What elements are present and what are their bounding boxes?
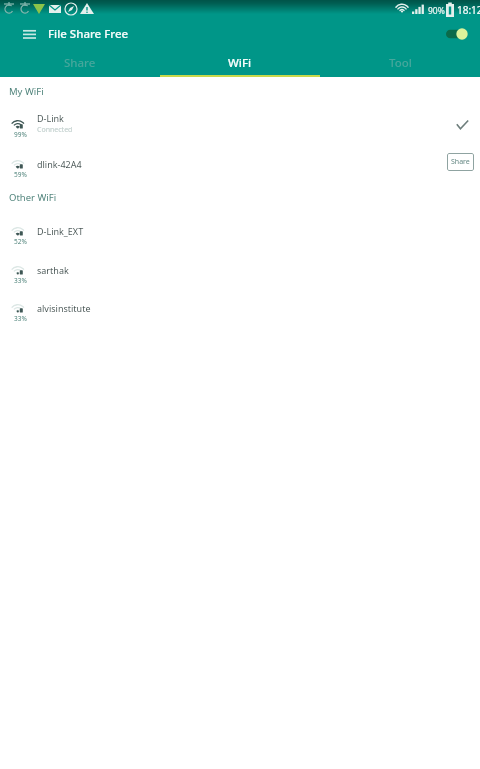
- button[interactable]: Menu: [0, 20, 48, 48]
- staticText: My WiFi: [9, 85, 44, 98]
- staticText: File Share Free: [48, 26, 129, 42]
- staticText: dlink-42A4: [37, 158, 82, 170]
- button[interactable]: Share: [447, 153, 474, 171]
- staticText: 59%: [14, 170, 27, 179]
- staticText: D-Link_EXT: [37, 225, 84, 237]
- button[interactable]: 52%: [0, 212, 480, 250]
- staticText: 18:12: [457, 3, 480, 17]
- staticText: sarthak: [37, 264, 69, 276]
- staticText: 52%: [14, 237, 27, 246]
- staticText: Share: [451, 157, 470, 167]
- staticText: 33%: [14, 276, 27, 285]
- button[interactable]: 33%: [0, 251, 480, 289]
- button[interactable]: 59%: [0, 145, 480, 183]
- staticText: alvisinstitute: [37, 302, 91, 314]
- staticText: Share: [64, 55, 96, 71]
- staticText: WiFi: [228, 55, 252, 71]
- button[interactable]: Share: [0, 48, 160, 77]
- button[interactable]: Connected: [449, 111, 475, 137]
- button[interactable]: WiFi toggle: [436, 20, 480, 48]
- staticText: 90%: [428, 5, 445, 17]
- staticText: Other WiFi: [9, 191, 57, 204]
- staticText: 99%: [14, 130, 27, 139]
- staticText: Connected: [37, 125, 73, 135]
- button[interactable]: Tool: [320, 48, 480, 77]
- staticText: 33%: [14, 314, 27, 323]
- staticText: D-Link: [37, 112, 64, 124]
- staticText: Tool: [389, 55, 412, 71]
- button[interactable]: WiFi: [160, 48, 320, 77]
- button[interactable]: 33%: [0, 289, 480, 327]
- button[interactable]: 99%: [0, 104, 480, 142]
